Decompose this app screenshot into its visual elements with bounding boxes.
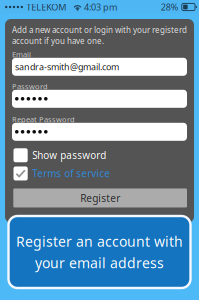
staticText: 28%	[161, 1, 179, 13]
staticText: Show password	[32, 149, 106, 162]
staticText: TELEKOM	[26, 1, 66, 13]
staticText: your email address	[35, 253, 164, 272]
staticText: Register an account with	[16, 232, 183, 251]
button[interactable]: sandra-smith@gmail.com	[12, 58, 187, 76]
button[interactable]: Register	[12, 188, 187, 207]
staticText: 4:03 pm	[84, 1, 117, 13]
staticText: sandra-smith@gmail.com	[15, 61, 119, 73]
staticText: Add a new account or login with your reg…	[12, 24, 187, 46]
button[interactable]: Show password	[12, 148, 187, 162]
staticText: Register	[80, 191, 120, 205]
button[interactable]: Terms of service	[12, 166, 187, 180]
staticText: Password	[12, 81, 48, 91]
button[interactable]	[12, 123, 187, 141]
staticText: Repeat Password	[12, 114, 75, 124]
staticText: Email	[12, 49, 31, 59]
staticText: Terms of service	[32, 167, 110, 180]
button[interactable]	[12, 90, 187, 108]
